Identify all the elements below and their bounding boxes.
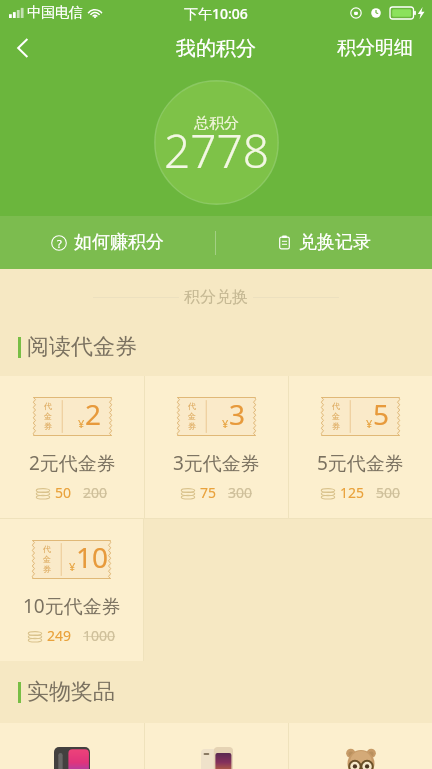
button[interactable] [145,723,288,769]
button[interactable]: 代 [0,376,144,518]
staticText: 2 [85,395,102,433]
button[interactable]: 兑换记录 [216,216,432,269]
staticText: 券 [332,421,340,431]
staticText: 如何赚积分 [74,231,164,254]
staticText: 积分兑换 [184,287,248,307]
staticText: 金 [188,411,196,421]
staticText: 积分明细 [337,36,413,60]
staticText: 实物奖品 [27,678,115,706]
staticText: 券 [188,421,196,431]
staticText: 代 [188,401,196,411]
button[interactable]: 返回 [0,26,46,70]
staticText: ¥ [366,416,373,431]
staticText: 10元代金券 [23,593,121,619]
staticText: 5元代金券 [317,450,404,476]
staticText: 500 [376,483,401,502]
staticText: 249 [47,626,72,645]
staticText: 5 [373,395,390,433]
staticText: ? [57,236,62,251]
staticText: 阅读代金券 [27,333,137,361]
staticText: 300 [228,483,253,502]
staticText: 中国电信 [27,4,83,22]
staticText: 代 [332,401,340,411]
staticText: 125 [340,483,365,502]
staticText: 下午10:06 [184,4,248,23]
staticText: 3 [229,395,246,433]
staticText: 券 [44,421,52,431]
staticText: 2元代金券 [29,450,116,476]
staticText: 金 [44,411,52,421]
staticText: 代 [44,401,52,411]
staticText: 总积分 [194,114,239,133]
staticText: 我的积分 [176,36,256,61]
button[interactable] [0,723,144,769]
button[interactable]: ? [0,216,215,269]
staticText: ¥ [222,416,229,431]
staticText: 1000 [83,626,116,645]
staticText: ¥ [78,416,85,431]
button[interactable]: 代 [145,376,288,518]
staticText: 券 [43,564,51,574]
staticText: 金 [332,411,340,421]
button[interactable]: 代 [0,519,143,661]
button[interactable]: 积分明细 [318,26,432,70]
staticText: 代 [43,544,51,554]
staticText: 50 [55,483,72,502]
button[interactable]: 代 [289,376,432,518]
staticText: 2778 [164,119,270,182]
staticText: 金 [43,554,51,564]
staticText: 75 [200,483,217,502]
staticText: ¥ [69,559,76,574]
staticText: 兑换记录 [299,231,371,254]
button[interactable] [289,723,432,769]
staticText: 200 [83,483,108,502]
staticText: 3元代金券 [173,450,260,476]
staticText: 10 [76,538,109,576]
